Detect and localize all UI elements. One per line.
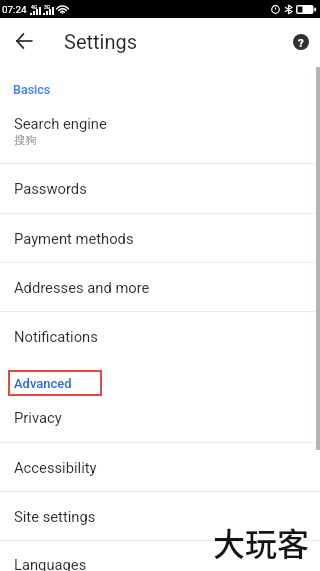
button[interactable]: Search engine — [0, 101, 320, 160]
staticText: Site settings — [14, 508, 96, 525]
staticText: Payment methods — [14, 230, 134, 247]
staticText: Addresses and more — [14, 279, 150, 296]
staticText: 搜狗 — [14, 133, 37, 147]
staticText: Accessibility — [14, 459, 97, 476]
button[interactable]: Site settings — [0, 492, 320, 540]
staticText: 大玩客 — [213, 519, 310, 565]
button[interactable]: Notifications — [0, 312, 320, 360]
staticText: ? — [298, 36, 304, 49]
button[interactable]: Privacy — [0, 394, 320, 440]
button[interactable]: Payment methods — [0, 214, 320, 262]
button[interactable]: Help — [287, 28, 315, 56]
staticText: Privacy — [14, 409, 62, 426]
button[interactable]: Basics — [13, 82, 51, 97]
staticText: Basics — [13, 82, 51, 97]
staticText: Advanced — [14, 376, 72, 391]
button[interactable]: Back — [10, 27, 38, 55]
button[interactable]: Addresses and more — [0, 263, 320, 311]
button[interactable]: Advanced — [14, 376, 72, 391]
button[interactable]: Accessibility — [0, 443, 320, 491]
staticText: 4G — [31, 4, 38, 10]
staticText: Settings — [64, 30, 138, 53]
staticText: Passwords — [14, 180, 87, 197]
button[interactable]: Passwords — [0, 164, 320, 213]
staticText: Search engine — [14, 115, 107, 132]
staticText: Notifications — [14, 328, 98, 345]
staticText: 3G — [44, 4, 51, 10]
staticText: Languages — [14, 556, 87, 571]
button[interactable]: Languages — [0, 541, 320, 571]
staticText: 07:24 — [2, 4, 27, 15]
